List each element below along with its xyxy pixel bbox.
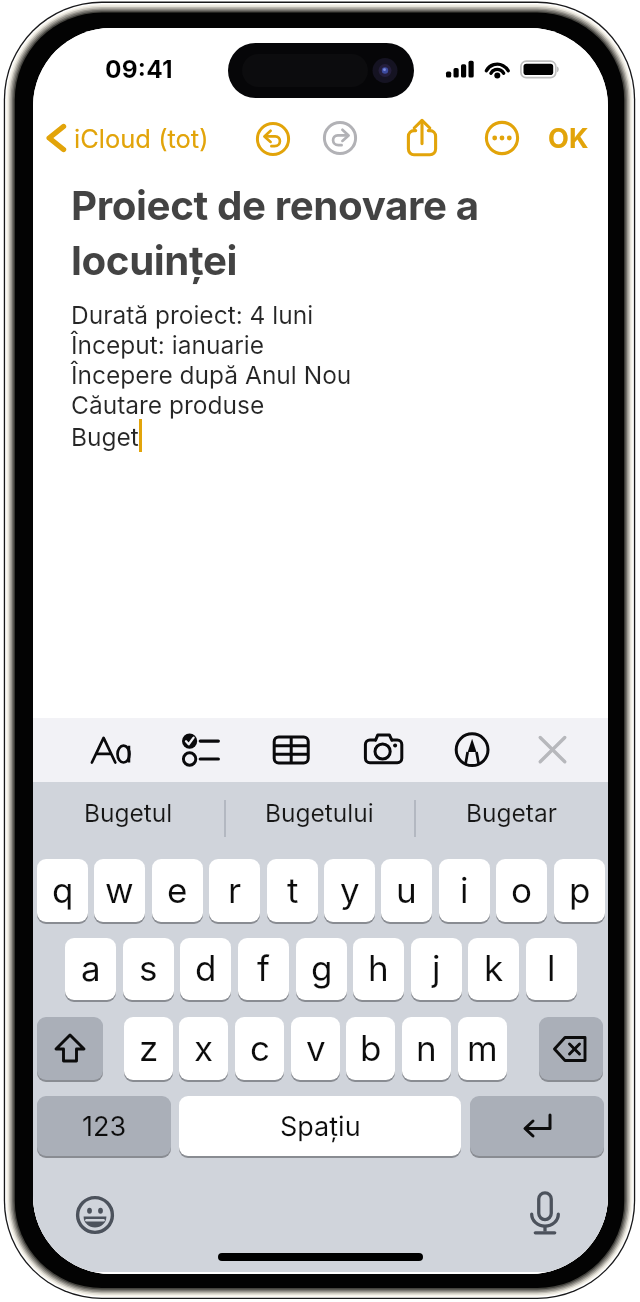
staticText: x xyxy=(194,1027,214,1069)
button[interactable]: v xyxy=(291,1017,340,1080)
staticText: n xyxy=(416,1027,437,1069)
button[interactable]: u xyxy=(381,859,432,922)
button[interactable]: Redo xyxy=(320,118,360,158)
button[interactable]: c xyxy=(235,1017,284,1080)
button[interactable]: OK xyxy=(540,115,596,161)
button[interactable]: a xyxy=(65,938,116,1000)
button[interactable]: iCloud (tot) xyxy=(41,114,215,162)
button[interactable]: n xyxy=(402,1017,451,1080)
staticText: z xyxy=(139,1027,159,1069)
staticText: Bugetul xyxy=(84,798,173,828)
button[interactable]: q xyxy=(37,859,88,922)
staticText: Durată proiect: 4 luni xyxy=(71,300,314,330)
button[interactable]: k xyxy=(468,938,519,1000)
staticText: Bugetului xyxy=(265,798,374,828)
button[interactable]: Spațiu xyxy=(179,1096,461,1156)
button[interactable]: f xyxy=(238,938,289,1000)
staticText: Proiect de renovare a locuinței xyxy=(71,181,581,285)
staticText: s xyxy=(139,947,158,989)
staticText: q xyxy=(52,869,74,911)
staticText: 123 xyxy=(82,1110,127,1143)
button[interactable]: Checklist xyxy=(173,724,227,776)
staticText: y xyxy=(340,869,360,911)
staticText: b xyxy=(360,1027,382,1069)
staticText: a xyxy=(81,947,101,989)
staticText: e xyxy=(167,869,188,911)
staticText: 09:41 xyxy=(105,54,173,84)
staticText: l xyxy=(547,947,556,989)
button[interactable]: j xyxy=(411,938,462,1000)
button[interactable]: Dictate xyxy=(521,1189,569,1237)
button[interactable]: r xyxy=(209,859,260,922)
button[interactable]: w xyxy=(94,859,145,922)
button[interactable]: p xyxy=(554,859,605,922)
staticText: m xyxy=(467,1027,498,1069)
button[interactable]: Hide keyboard xyxy=(531,724,574,776)
button[interactable]: s xyxy=(123,938,174,1000)
button[interactable]: Emoji xyxy=(71,1191,119,1239)
button[interactable]: Undo xyxy=(253,119,293,159)
staticText: o xyxy=(511,869,532,911)
button[interactable]: 123 xyxy=(37,1096,171,1156)
button[interactable]: Table xyxy=(264,724,319,776)
button[interactable]: b xyxy=(346,1017,395,1080)
staticText: u xyxy=(396,869,417,911)
staticText: OK xyxy=(548,122,589,155)
staticText: i xyxy=(460,869,469,911)
button[interactable]: y xyxy=(324,859,375,922)
button[interactable]: d xyxy=(180,938,231,1000)
button[interactable]: z xyxy=(124,1017,173,1080)
button[interactable]: t xyxy=(267,859,318,922)
staticText: Căutare produse xyxy=(71,390,265,420)
staticText: k xyxy=(484,947,504,989)
staticText: Buget xyxy=(71,422,139,452)
staticText: p xyxy=(569,869,591,911)
staticText: r xyxy=(228,869,242,911)
button[interactable]: Return xyxy=(470,1096,604,1156)
button[interactable]: Text formatting xyxy=(83,724,139,776)
button[interactable]: More xyxy=(482,118,522,158)
button[interactable]: l xyxy=(526,938,577,1000)
staticText: g xyxy=(311,947,333,989)
staticText: Început: ianuarie xyxy=(71,330,265,360)
button[interactable]: Bugetul xyxy=(33,782,224,844)
button[interactable]: Backspace xyxy=(539,1017,603,1080)
staticText: v xyxy=(306,1027,326,1069)
button[interactable]: g xyxy=(296,938,347,1000)
button[interactable]: Share xyxy=(401,116,443,158)
staticText: Spațiu xyxy=(280,1110,361,1143)
staticText: j xyxy=(432,947,441,989)
staticText: t xyxy=(287,869,299,911)
button[interactable]: i xyxy=(439,859,490,922)
button[interactable]: Bugetului xyxy=(225,782,413,844)
button[interactable]: e xyxy=(152,859,203,922)
staticText: d xyxy=(195,947,217,989)
staticText: w xyxy=(105,869,134,911)
button[interactable]: Camera xyxy=(355,724,412,776)
staticText: h xyxy=(368,947,389,989)
button[interactable]: Markup xyxy=(447,724,497,776)
staticText: c xyxy=(250,1027,270,1069)
staticText: f xyxy=(257,947,270,989)
staticText: Bugetar xyxy=(466,798,557,828)
staticText: iCloud (tot) xyxy=(74,123,209,154)
button[interactable]: h xyxy=(353,938,404,1000)
button[interactable]: m xyxy=(458,1017,507,1080)
button[interactable]: Shift xyxy=(37,1017,103,1080)
button[interactable]: x xyxy=(179,1017,228,1080)
button[interactable]: o xyxy=(496,859,547,922)
button[interactable]: Bugetar xyxy=(415,782,608,844)
staticText: Începere după Anul Nou xyxy=(71,360,352,390)
